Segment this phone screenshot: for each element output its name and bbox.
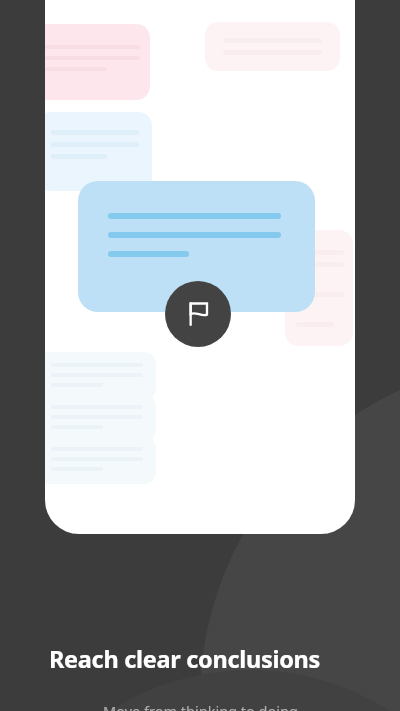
button[interactable] (78, 181, 315, 312)
button[interactable]: Flag (165, 281, 231, 347)
staticText: Move from thinking to doing (103, 701, 298, 711)
staticText: Reach clear conclusions (49, 643, 321, 673)
